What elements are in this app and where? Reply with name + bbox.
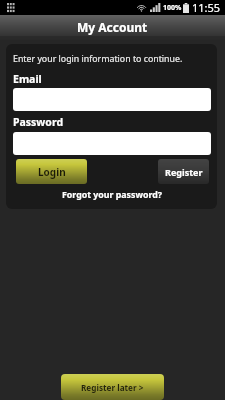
other: Wi-Fi bbox=[136, 2, 147, 13]
staticText: 11:55 bbox=[192, 0, 221, 15]
staticText: Register later > bbox=[81, 382, 144, 393]
button[interactable]: Forgot your password? bbox=[62, 189, 162, 201]
staticText: My Account bbox=[77, 19, 148, 35]
other: Notification bbox=[7, 3, 15, 13]
staticText: Login bbox=[38, 165, 66, 179]
button[interactable]: Login bbox=[16, 159, 87, 184]
button[interactable]: Email input bbox=[13, 88, 211, 111]
staticText: Enter your login information to continue… bbox=[13, 53, 183, 65]
staticText: Register bbox=[165, 166, 203, 178]
staticText: Email bbox=[13, 72, 42, 86]
other: Signal strength bbox=[150, 3, 161, 12]
other: Battery full bbox=[183, 3, 189, 13]
staticText: Password bbox=[13, 115, 64, 129]
button[interactable]: Register bbox=[158, 159, 209, 184]
button[interactable]: Register later > bbox=[61, 374, 164, 400]
staticText: 100% bbox=[163, 3, 182, 13]
button[interactable]: Password input bbox=[13, 132, 211, 155]
